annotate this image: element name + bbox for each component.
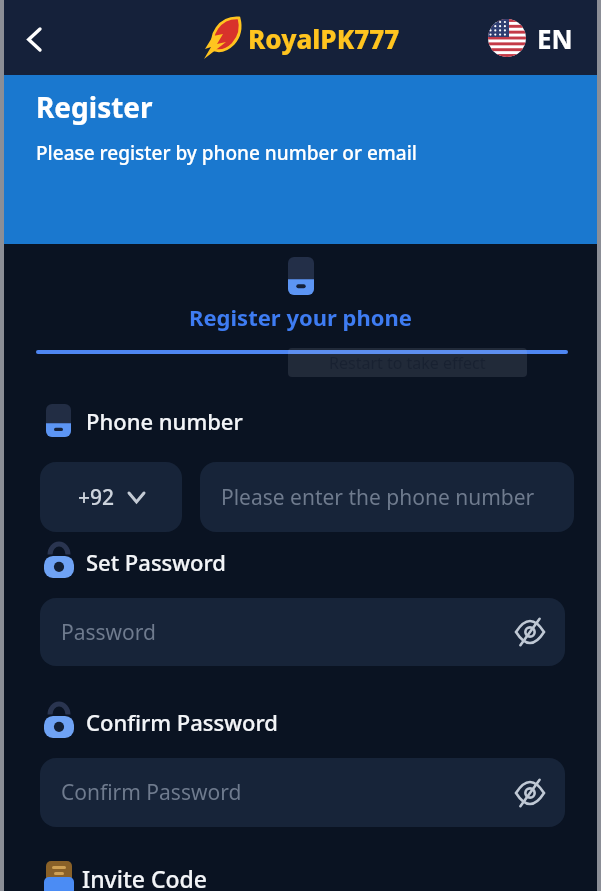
button[interactable]: RoyalPK777 bbox=[202, 17, 400, 59]
staticText: RoyalPK777 bbox=[248, 21, 400, 56]
button[interactable]: Register your phone bbox=[0, 302, 601, 332]
staticText: Register bbox=[36, 88, 153, 126]
button[interactable]: Confirm Password bbox=[40, 758, 565, 827]
staticText: Password bbox=[61, 618, 156, 647]
button[interactable]: Password bbox=[40, 598, 565, 666]
button[interactable]: Please enter the phone number bbox=[200, 462, 574, 532]
staticText: Set Password bbox=[86, 547, 226, 577]
staticText: Confirm Password bbox=[61, 778, 242, 807]
staticText: Phone number bbox=[86, 406, 243, 436]
staticText: EN bbox=[537, 21, 573, 56]
staticText: Restart to take effect bbox=[329, 352, 486, 374]
staticText: Please enter the phone number bbox=[221, 483, 535, 512]
button[interactable]: +92 bbox=[40, 462, 182, 532]
button[interactable]: EN bbox=[488, 19, 573, 57]
staticText: +92 bbox=[78, 483, 115, 512]
staticText: Confirm Password bbox=[86, 707, 278, 737]
staticText: Invite Code bbox=[82, 863, 208, 891]
staticText: Please register by phone number or email bbox=[36, 140, 417, 166]
button[interactable] bbox=[12, 17, 56, 61]
